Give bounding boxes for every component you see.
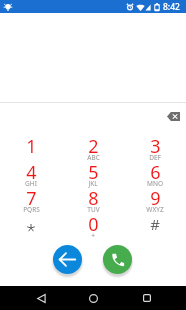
staticText: 3 — [150, 134, 161, 159]
button[interactable]: 7 — [0, 190, 62, 216]
staticText: 8 — [88, 186, 99, 211]
staticText: MNO — [147, 179, 163, 188]
button[interactable]: 4 — [0, 164, 62, 190]
staticText: 2 — [88, 134, 99, 159]
button[interactable]: 5 — [62, 164, 124, 190]
staticText: # — [150, 214, 160, 234]
staticText: ABC — [87, 153, 100, 162]
button[interactable]: Back — [29, 286, 53, 310]
button[interactable]: Recent apps — [134, 286, 158, 310]
staticText: 7 — [26, 186, 37, 211]
button[interactable]: 2 — [62, 138, 124, 164]
staticText: 1 — [26, 134, 37, 159]
staticText: 8:42 — [163, 1, 180, 13]
button[interactable]: 8 — [62, 190, 124, 216]
button[interactable]: # — [124, 216, 186, 242]
staticText: 0 — [88, 212, 99, 237]
button[interactable]: 1 — [0, 138, 62, 164]
staticText: GHI — [25, 179, 37, 188]
button[interactable] — [0, 216, 62, 242]
button[interactable]: 0 — [62, 216, 124, 242]
staticText: 5 — [88, 160, 99, 185]
staticText: 4 — [26, 160, 37, 185]
staticText: 9 — [150, 186, 161, 211]
button[interactable]: Call — [103, 245, 132, 274]
button[interactable]: 6 — [124, 164, 186, 190]
button[interactable]: Back — [53, 245, 82, 274]
button[interactable]: 3 — [124, 138, 186, 164]
staticText: 6 — [150, 160, 161, 185]
staticText: + — [91, 231, 95, 240]
button[interactable]: Home — [81, 286, 105, 310]
staticText: JKL — [88, 179, 98, 188]
staticText: PQRS — [23, 205, 40, 214]
button[interactable]: Backspace — [162, 105, 184, 127]
button[interactable]: 9 — [124, 190, 186, 216]
staticText: DEF — [149, 153, 161, 162]
staticText: WXYZ — [146, 205, 164, 214]
staticText: TUV — [87, 205, 100, 214]
